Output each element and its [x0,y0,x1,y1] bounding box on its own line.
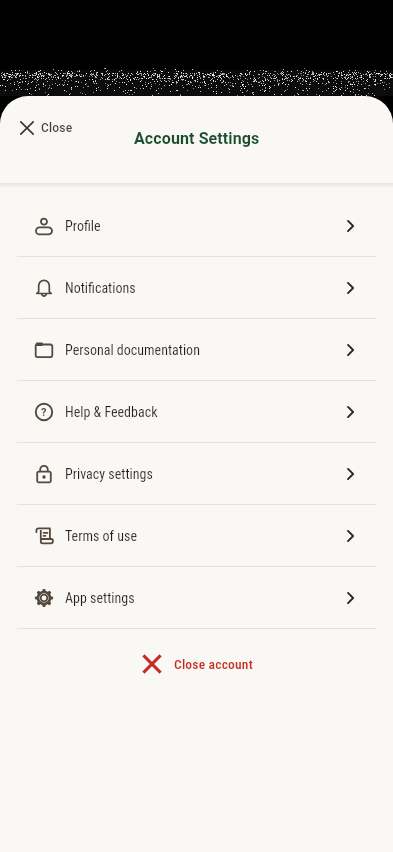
staticText: Personal documentation [65,342,200,358]
button[interactable]: Close [14,117,79,139]
button[interactable]: App settings [0,567,393,628]
staticText: Notifications [65,280,136,296]
staticText: ? [41,406,47,419]
staticText: Account Settings [134,129,260,148]
button[interactable]: Notifications [0,257,393,318]
button[interactable]: Close account [127,629,267,699]
staticText: Profile [65,218,101,234]
staticText: App settings [65,590,135,606]
button[interactable]: Profile [0,195,393,256]
button[interactable]: Privacy settings [0,443,393,504]
button[interactable]: Personal documentation [0,319,393,380]
staticText: Close [41,121,73,135]
button[interactable]: Terms of use [0,505,393,566]
staticText: Close account [174,656,253,672]
button[interactable]: ? [0,381,393,442]
staticText: Help & Feedback [65,404,158,420]
staticText: Terms of use [65,528,137,544]
staticText: Privacy settings [65,466,153,482]
